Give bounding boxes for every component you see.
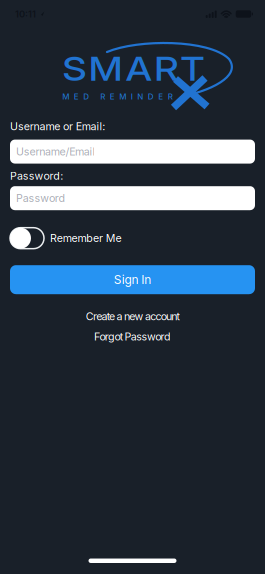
staticText: Password — [16, 192, 66, 204]
staticText: T — [174, 49, 195, 88]
staticText: M — [95, 49, 125, 88]
staticText: Username/Email — [16, 145, 95, 158]
staticText: A — [126, 49, 149, 88]
staticText: R — [151, 49, 172, 88]
staticText: D — [148, 92, 154, 101]
staticText: Forgot Password — [94, 330, 171, 343]
staticText: Create a new account — [86, 310, 179, 323]
button[interactable]: Create a new account — [86, 310, 179, 323]
staticText: Password: — [10, 170, 63, 182]
staticText: R — [168, 92, 173, 101]
staticText: D — [83, 92, 89, 101]
staticText: M — [119, 92, 126, 101]
staticText: E — [74, 92, 79, 101]
staticText: N — [137, 92, 143, 101]
button[interactable]: Forgot Password — [94, 330, 171, 343]
staticText: E — [110, 92, 115, 101]
staticText: Sign In — [114, 273, 151, 287]
button[interactable]: Remember Me — [10, 227, 121, 249]
staticText: Remember Me — [50, 232, 121, 244]
staticText: M — [62, 92, 69, 101]
staticText: I — [131, 92, 133, 101]
button[interactable]: Sign In — [10, 265, 255, 294]
staticText: Username or Email: — [10, 120, 105, 133]
staticText: S — [72, 49, 93, 88]
staticText: 10:11 — [15, 8, 36, 19]
staticText: R — [100, 92, 105, 101]
staticText: E — [158, 92, 163, 101]
